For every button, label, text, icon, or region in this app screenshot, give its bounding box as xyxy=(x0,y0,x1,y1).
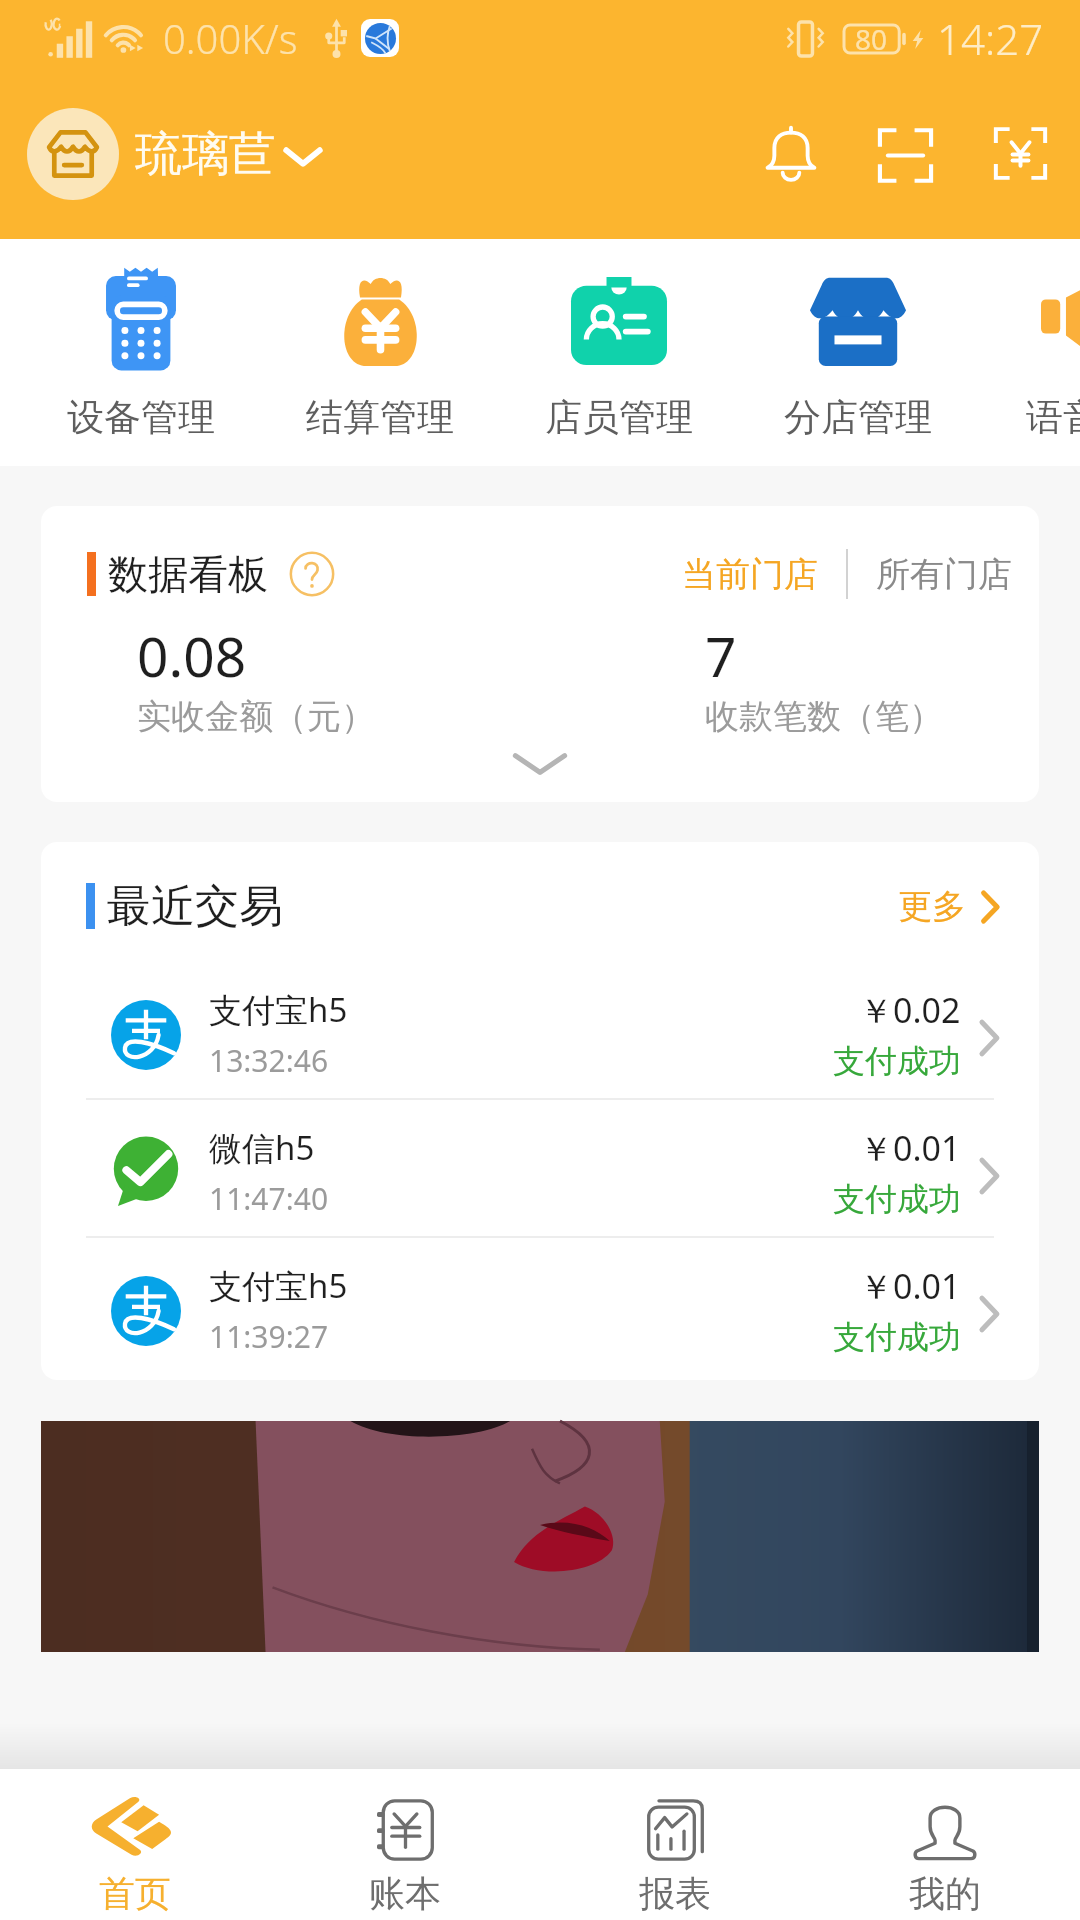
button[interactable]: 所有门店 xyxy=(876,553,1012,596)
button[interactable]: 微信h5 xyxy=(41,1100,1039,1236)
staticText: 微信h5 xyxy=(209,1125,315,1170)
button[interactable]: Scan code xyxy=(848,96,963,211)
button[interactable]: 当前门店 xyxy=(682,553,818,596)
staticText: 支付成功 xyxy=(833,1317,961,1357)
staticText: 设备管理 xyxy=(67,394,215,441)
button[interactable]: 首页 xyxy=(0,1769,270,1920)
staticText: 语音 xyxy=(1026,394,1080,441)
staticText: 最近交易 xyxy=(107,879,283,934)
staticText: 支付宝h5 xyxy=(209,1263,348,1308)
staticText: 首页 xyxy=(99,1871,171,1916)
staticText: 收款笔数（笔） xyxy=(705,695,943,738)
staticText: 0.00K/s xyxy=(163,11,298,65)
button[interactable]: 更多 xyxy=(898,877,1000,936)
staticText: 支付成功 xyxy=(833,1179,961,1219)
button[interactable]: 报表 xyxy=(540,1769,810,1920)
staticText: 琉璃苣 xyxy=(135,125,276,184)
staticText: 更多 xyxy=(898,885,966,928)
button[interactable]: 店员管理 xyxy=(499,239,738,466)
button[interactable]: 琉璃苣 xyxy=(27,108,322,200)
staticText: 7 xyxy=(705,618,737,693)
staticText: 13:32:46 xyxy=(209,1040,329,1081)
button[interactable]: 设备管理 xyxy=(21,239,260,466)
staticText: 80 xyxy=(855,20,888,58)
button[interactable]: 结算管理 xyxy=(260,239,499,466)
button[interactable]: 语音 xyxy=(1011,239,1080,466)
button[interactable]: 支付宝h5 xyxy=(41,1238,1039,1374)
staticText: 14:27 xyxy=(937,10,1044,67)
staticText: 11:39:27 xyxy=(209,1316,329,1357)
staticText: 报表 xyxy=(639,1871,711,1916)
button[interactable]: Notifications xyxy=(733,96,848,211)
staticText: ￥0.01 xyxy=(859,1125,961,1171)
staticText: 0.08 xyxy=(137,618,247,693)
staticText: 支付成功 xyxy=(833,1041,961,1081)
staticText: 实收金额（元） xyxy=(137,695,375,738)
staticText: 11:47:40 xyxy=(209,1178,329,1219)
staticText: 支付宝h5 xyxy=(209,987,348,1032)
staticText: 店员管理 xyxy=(545,394,693,441)
staticText: 账本 xyxy=(369,1871,441,1916)
button[interactable]: 我的 xyxy=(810,1769,1080,1920)
staticText: 结算管理 xyxy=(306,394,454,441)
staticText: 数据看板 xyxy=(108,549,268,599)
button[interactable]: 分店管理 xyxy=(738,239,977,466)
button[interactable]: Expand xyxy=(495,740,585,788)
staticText: 分店管理 xyxy=(784,394,932,441)
staticText: ￥0.02 xyxy=(859,987,961,1033)
button[interactable]: Help xyxy=(288,550,336,598)
staticText: 我的 xyxy=(909,1871,981,1916)
button[interactable]: 支付宝h5 xyxy=(41,962,1039,1098)
button[interactable]: 账本 xyxy=(270,1769,540,1920)
button[interactable]: Collect payment xyxy=(963,96,1078,211)
staticText: ￥0.01 xyxy=(859,1263,961,1309)
